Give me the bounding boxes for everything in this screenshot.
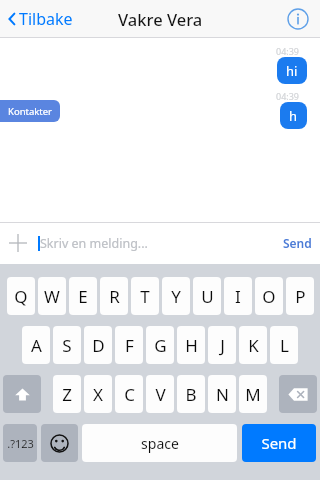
staticText: E xyxy=(78,285,88,308)
button[interactable]: Y xyxy=(162,277,190,315)
staticText: T xyxy=(140,285,150,308)
staticText: M xyxy=(245,383,261,406)
button[interactable]: h xyxy=(280,102,307,129)
button[interactable]: Emoji xyxy=(41,424,78,462)
staticText: N xyxy=(216,383,229,406)
button[interactable]: M xyxy=(239,375,267,413)
staticText: Q xyxy=(14,285,28,308)
staticText: J xyxy=(220,334,225,357)
button[interactable]: Z xyxy=(53,375,81,413)
button[interactable]: J xyxy=(208,326,236,364)
button[interactable]: B xyxy=(177,375,205,413)
button[interactable]: Shift xyxy=(3,375,41,413)
button[interactable]: space xyxy=(82,424,237,462)
button[interactable]: C xyxy=(115,375,143,413)
staticText: Vakre Vera xyxy=(118,8,203,30)
staticText: V xyxy=(155,383,166,406)
button[interactable]: P xyxy=(286,277,314,315)
button[interactable]: hi xyxy=(277,57,307,84)
button[interactable]: R xyxy=(100,277,128,315)
staticText: Skriv en melding... xyxy=(40,235,148,252)
button[interactable]: T xyxy=(131,277,159,315)
button[interactable]: Info xyxy=(285,6,311,32)
button[interactable]: E xyxy=(69,277,97,315)
staticText: H xyxy=(185,334,198,357)
button[interactable]: F xyxy=(115,326,143,364)
staticText: I xyxy=(235,285,241,308)
button[interactable]: V xyxy=(146,375,174,413)
staticText: B xyxy=(185,383,197,406)
staticText: 04:39 xyxy=(276,90,300,102)
staticText: 04:39 xyxy=(276,45,300,57)
staticText: F xyxy=(125,334,134,357)
staticText: W xyxy=(44,285,60,308)
button[interactable]: Add attachment xyxy=(5,230,31,256)
button[interactable]: A xyxy=(22,326,50,364)
staticText: U xyxy=(201,285,214,308)
staticText: space xyxy=(141,434,179,453)
button[interactable]: Kontakter xyxy=(0,100,60,122)
button[interactable]: G xyxy=(146,326,174,364)
staticText: Send xyxy=(261,433,297,453)
button[interactable]: I xyxy=(224,277,252,315)
button[interactable]: Send xyxy=(283,235,312,251)
button[interactable]: H xyxy=(177,326,205,364)
button[interactable]: L xyxy=(270,326,298,364)
button[interactable]: W xyxy=(38,277,66,315)
staticText: C xyxy=(124,383,135,406)
staticText: D xyxy=(92,334,105,357)
button[interactable]: Tilbake xyxy=(8,8,73,30)
staticText: S xyxy=(62,334,72,357)
staticText: R xyxy=(109,285,120,308)
button[interactable]: N xyxy=(208,375,236,413)
staticText: K xyxy=(248,334,259,357)
button[interactable]: S xyxy=(53,326,81,364)
staticText: Tilbake xyxy=(19,8,73,30)
staticText: P xyxy=(295,285,306,308)
staticText: Kontakter xyxy=(8,105,53,118)
button[interactable]: U xyxy=(193,277,221,315)
staticText: G xyxy=(154,334,167,357)
button[interactable]: D xyxy=(84,326,112,364)
staticText: L xyxy=(280,334,289,357)
button[interactable]: Q xyxy=(7,277,35,315)
button[interactable]: O xyxy=(255,277,283,315)
button[interactable]: Backspace xyxy=(279,375,317,413)
staticText: Send xyxy=(283,235,312,251)
staticText: Y xyxy=(171,285,181,308)
button[interactable]: Send xyxy=(242,424,316,462)
staticText: O xyxy=(262,285,276,308)
staticText: A xyxy=(31,334,42,357)
staticText: Z xyxy=(62,383,72,406)
staticText: h xyxy=(289,107,298,125)
button[interactable]: K xyxy=(239,326,267,364)
button[interactable]: .?123 xyxy=(3,424,37,462)
button[interactable]: X xyxy=(84,375,112,413)
staticText: X xyxy=(93,383,103,406)
staticText: .?123 xyxy=(7,436,34,451)
staticText: hi xyxy=(286,62,298,80)
